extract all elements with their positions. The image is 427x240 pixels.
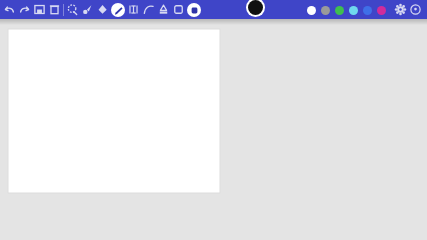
button[interactable]: Curve [141, 1, 156, 18]
button[interactable]: Selected color [246, 0, 265, 17]
button[interactable]: Redo [17, 1, 32, 18]
button[interactable]: Fill [95, 1, 110, 18]
button[interactable]: Delete [47, 1, 62, 18]
button[interactable]: Text [126, 1, 141, 18]
button[interactable]: Blue [360, 3, 374, 17]
button[interactable]: Save [32, 1, 47, 18]
button[interactable]: Brush [80, 1, 95, 18]
button[interactable]: Green [332, 3, 346, 17]
button[interactable]: Select [65, 1, 80, 18]
button[interactable]: Settings [393, 1, 408, 18]
button[interactable]: Gray [318, 3, 332, 17]
button[interactable]: Undo [2, 1, 17, 18]
button[interactable]: Stamp [156, 1, 171, 18]
button[interactable]: White [304, 3, 318, 17]
button[interactable]: Shape [171, 1, 186, 18]
button[interactable]: Frame [186, 1, 202, 18]
button[interactable]: Cyan [346, 3, 360, 17]
button[interactable]: Help [408, 1, 423, 18]
button[interactable]: Magenta [374, 3, 388, 17]
button[interactable]: Pen [110, 1, 126, 18]
